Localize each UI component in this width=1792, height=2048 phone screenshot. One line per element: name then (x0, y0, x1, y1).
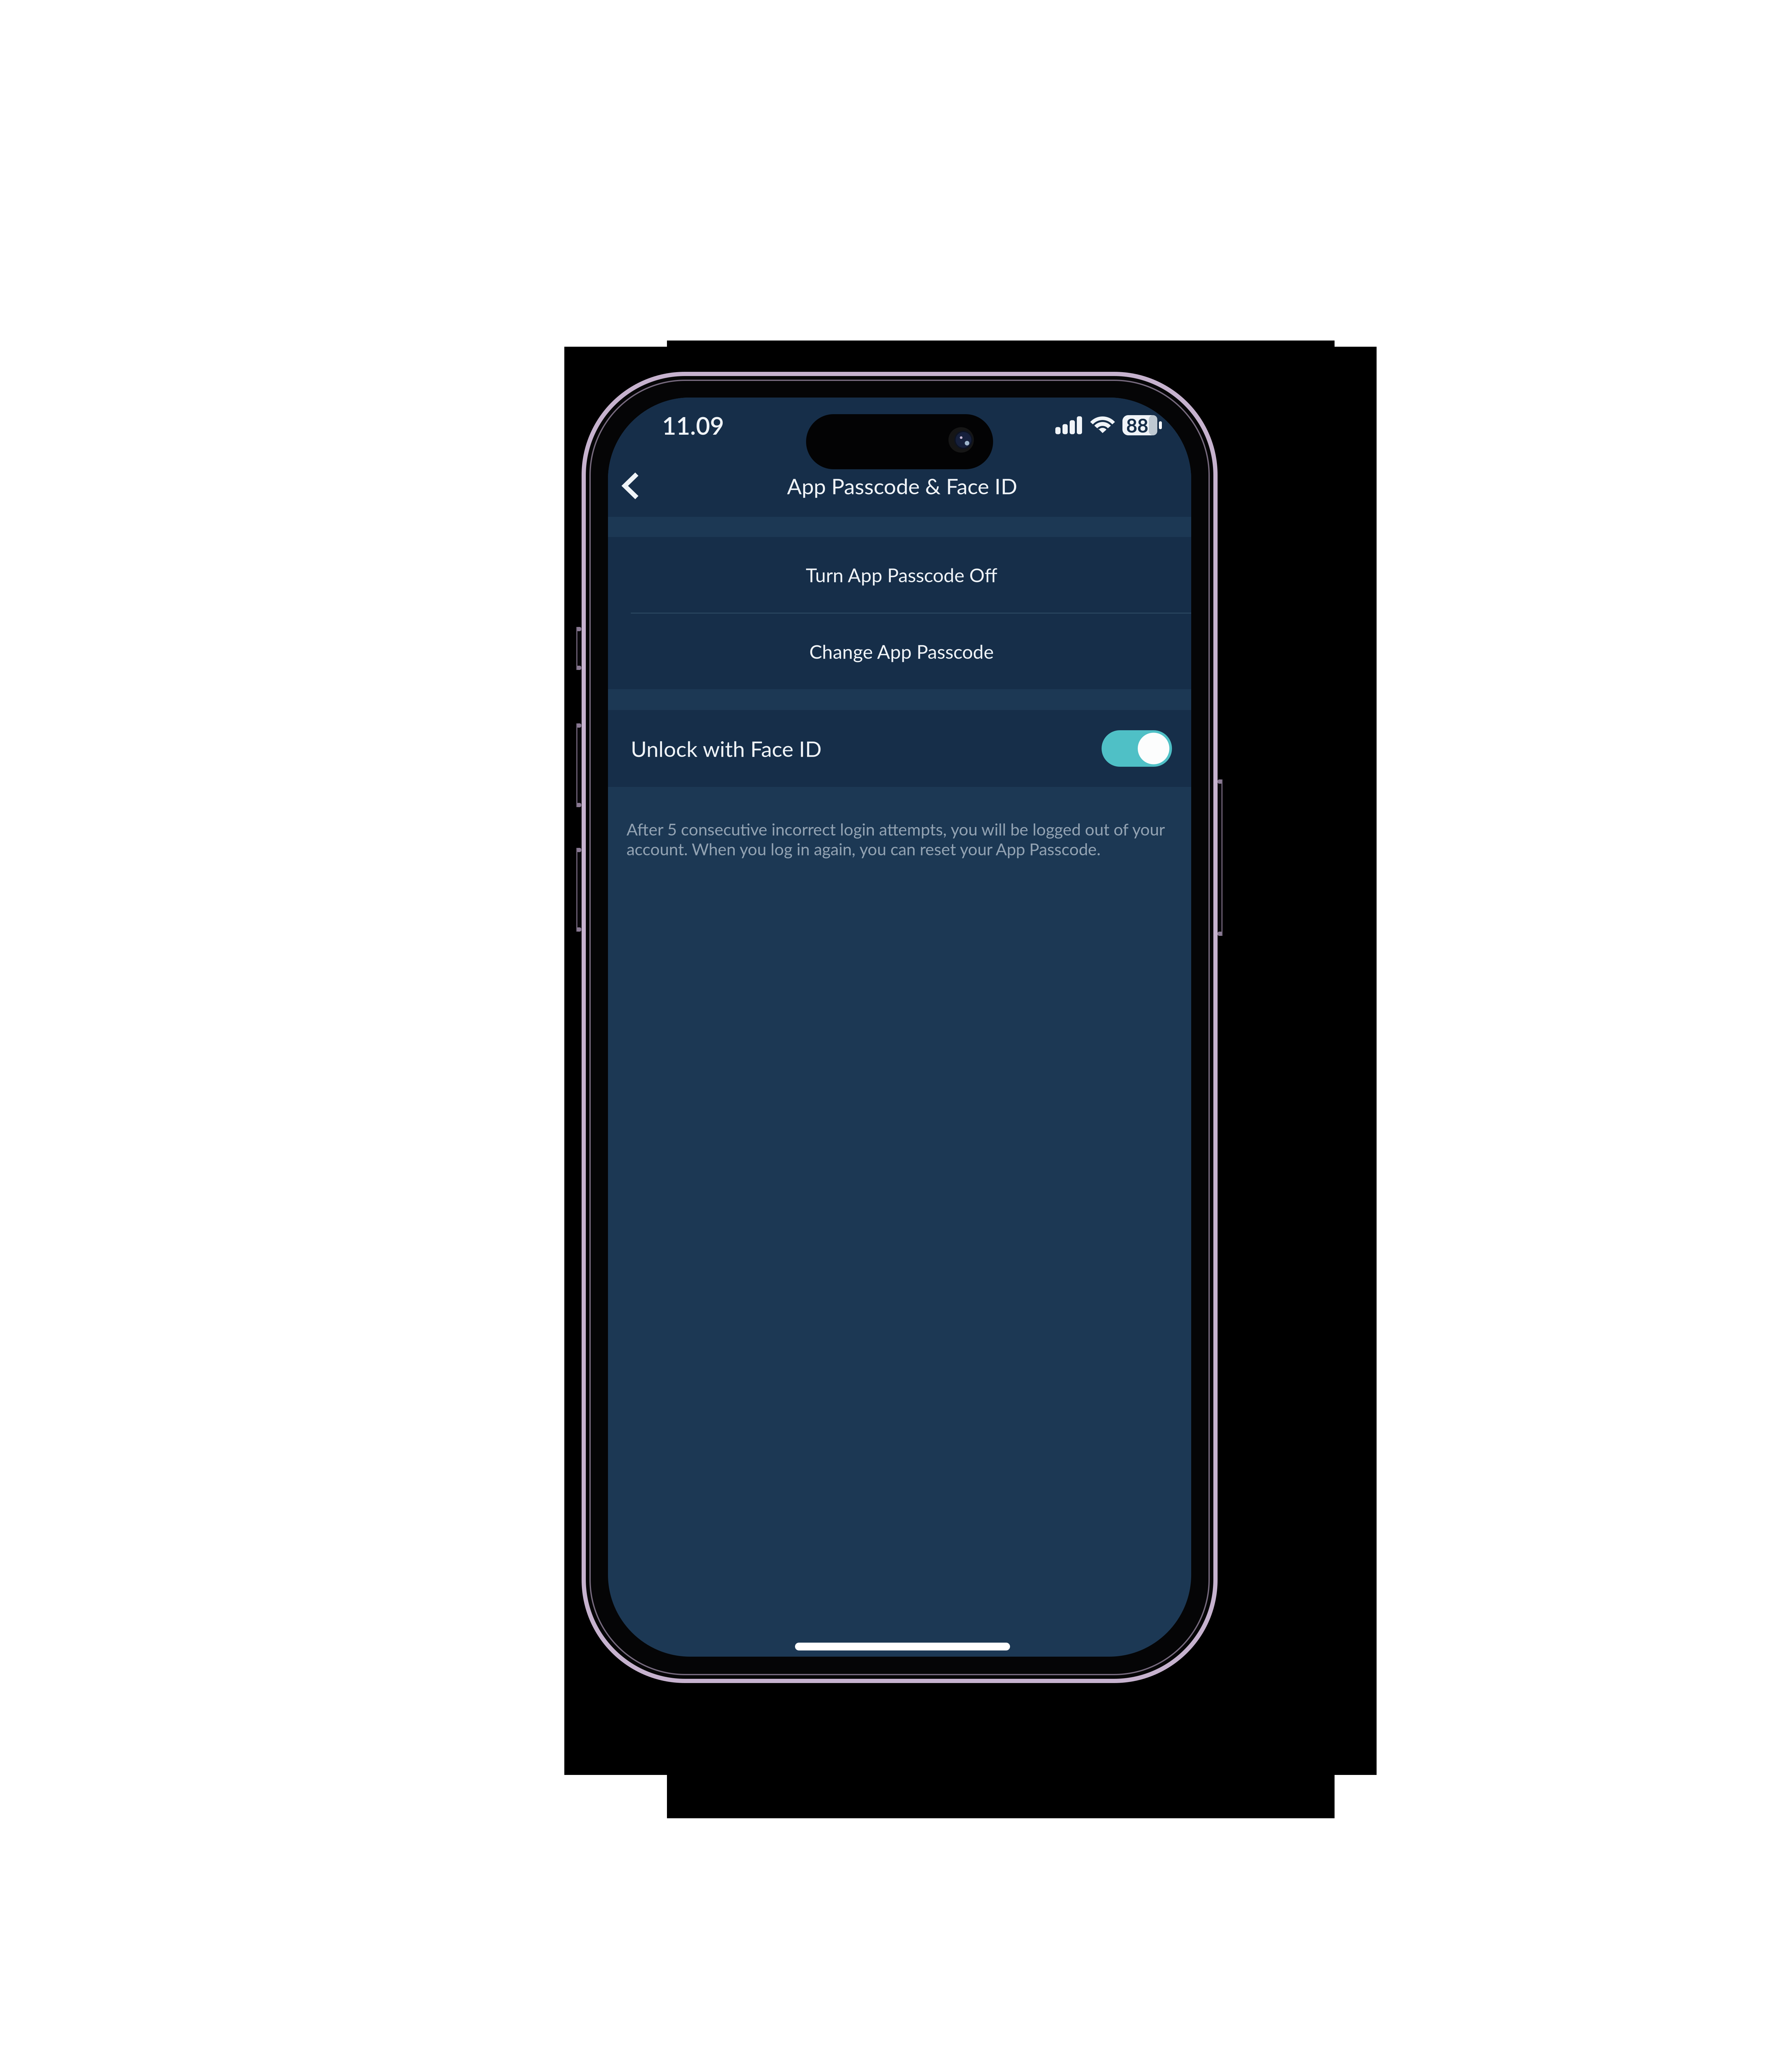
staticText: After 5 consecutive incorrect login atte… (627, 819, 1164, 859)
staticText: 88 (1126, 414, 1148, 437)
button[interactable]: Unlock with Face ID (608, 710, 1191, 787)
button[interactable]: Change App Passcode (608, 614, 1191, 689)
button[interactable]: Turn App Passcode Off (608, 537, 1191, 613)
staticText: App Passcode & Face ID (787, 473, 1017, 499)
staticText: Turn App Passcode Off (806, 563, 997, 586)
staticText: 11.09 (662, 411, 724, 440)
staticText: Unlock with Face ID (631, 735, 822, 762)
staticText: Change App Passcode (809, 640, 994, 663)
button[interactable]: Back (610, 465, 652, 507)
